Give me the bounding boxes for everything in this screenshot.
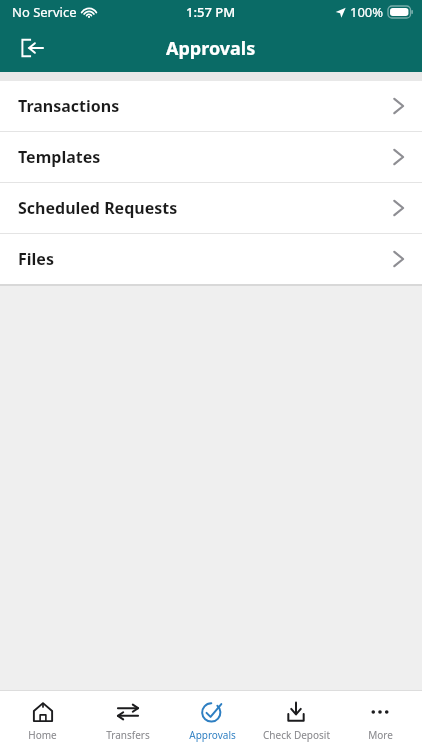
button[interactable]: Transactions (0, 81, 422, 131)
button[interactable]: Templates (0, 132, 422, 182)
staticText: 1:57 PM (186, 3, 236, 21)
staticText: Templates (18, 146, 393, 168)
button[interactable]: Approvals (170, 691, 254, 750)
staticText: Transactions (18, 95, 393, 117)
button[interactable]: Files (0, 234, 422, 284)
staticText: Files (18, 248, 393, 270)
staticText: No Service (12, 3, 77, 21)
staticText: Transfers (106, 728, 150, 742)
button[interactable]: Scheduled Requests (0, 183, 422, 233)
button[interactable]: Log out (8, 24, 56, 72)
staticText: More (368, 728, 393, 742)
button[interactable]: More (338, 691, 422, 750)
staticText: Approvals (189, 728, 236, 742)
staticText: Scheduled Requests (18, 197, 393, 219)
button[interactable]: Transfers (85, 691, 170, 750)
button[interactable]: Check Deposit (254, 691, 338, 750)
staticText: Check Deposit (263, 728, 330, 742)
button[interactable]: Home (0, 691, 85, 750)
staticText: Home (28, 728, 57, 742)
staticText: Approvals (166, 36, 256, 61)
staticText: 100% (350, 3, 384, 21)
